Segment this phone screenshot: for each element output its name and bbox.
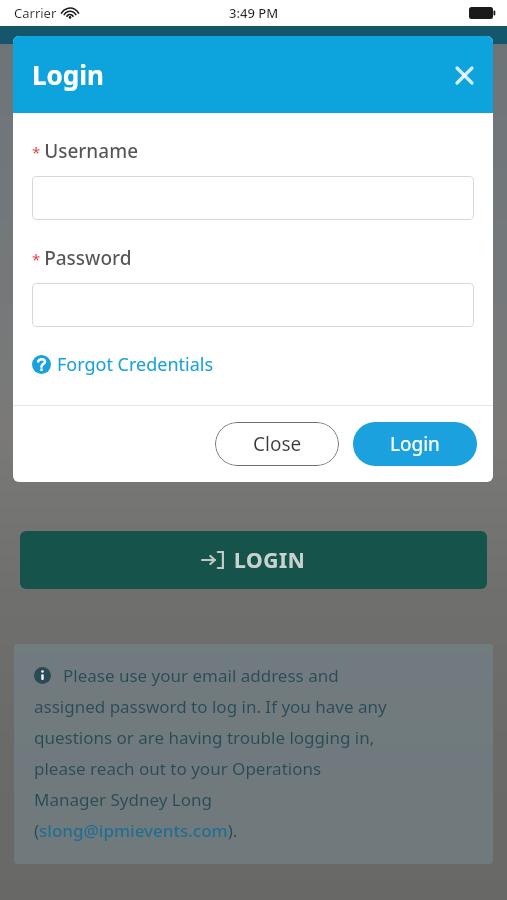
staticText: Forgot Credentials — [57, 352, 214, 377]
staticText: 3:49 PM — [229, 4, 279, 22]
staticText: Login — [390, 431, 440, 457]
staticText: questions or are having trouble logging … — [34, 726, 375, 749]
button[interactable]: Close — [215, 422, 339, 466]
staticText: * Username — [32, 138, 139, 164]
staticText: Login — [32, 57, 104, 92]
staticText: assigned password to log in. If you have… — [34, 695, 387, 718]
staticText: * Password — [32, 245, 132, 271]
staticText: please reach out to your Operations — [34, 757, 322, 780]
button[interactable]: LOGIN — [20, 531, 487, 589]
staticText: LOGIN — [234, 546, 306, 575]
button[interactable]: Text input field — [32, 176, 474, 220]
staticText: Manager Sydney Long — [34, 788, 212, 811]
button[interactable]: Forgot Credentials — [32, 352, 214, 377]
button[interactable]: Close dialog — [445, 56, 483, 94]
button[interactable]: (slong@ipmievents.com). — [34, 819, 238, 842]
staticText: Close — [253, 431, 302, 457]
button[interactable]: Login — [353, 422, 477, 466]
button[interactable]: Text input field — [32, 283, 474, 327]
staticText: Please use your email address and — [63, 664, 339, 687]
staticText: Carrier — [14, 4, 57, 22]
